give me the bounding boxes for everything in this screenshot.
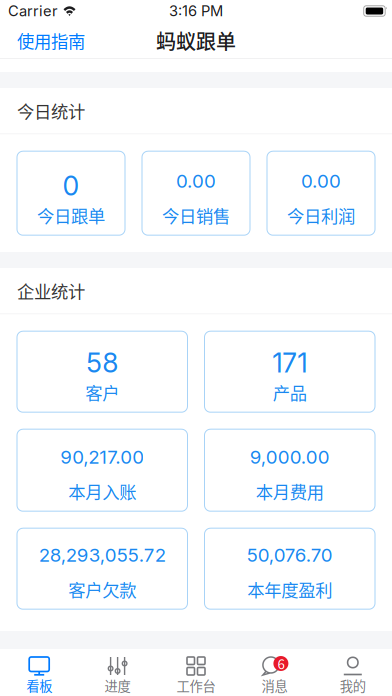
button[interactable]: 0.00 — [267, 151, 375, 235]
button[interactable]: 使用指南 — [17, 28, 85, 53]
staticText: 工作台 — [176, 676, 215, 695]
button[interactable]: 工作台 — [157, 649, 235, 696]
staticText: 消息 — [261, 676, 287, 695]
staticText: 客户欠款 — [68, 577, 136, 602]
staticText: 今日利润 — [287, 203, 355, 228]
staticText: 6 — [277, 654, 284, 673]
button[interactable]: 171 — [204, 331, 375, 412]
staticText: 本年度盈利 — [247, 577, 332, 602]
staticText: 0.00 — [176, 170, 216, 192]
button[interactable]: 28,293,055.72 — [17, 528, 187, 609]
staticText: 0 — [62, 170, 79, 202]
button[interactable]: 9,000.00 — [204, 429, 375, 511]
button[interactable]: 我的 — [314, 649, 392, 696]
staticText: 3:16 PM — [169, 2, 223, 20]
staticText: 进度 — [105, 676, 131, 695]
button[interactable]: 50,076.70 — [204, 528, 375, 609]
staticText: 171 — [272, 347, 307, 379]
staticText: 0.00 — [301, 170, 341, 192]
button[interactable]: 90,217.00 — [17, 429, 187, 511]
staticText: 本月费用 — [256, 479, 324, 504]
staticText: 9,000.00 — [250, 446, 330, 468]
staticText: 58 — [86, 347, 118, 379]
button[interactable]: 58 — [17, 331, 187, 412]
staticText: 产品 — [273, 380, 307, 405]
staticText: 客户 — [85, 380, 119, 405]
button[interactable]: 0.00 — [142, 151, 250, 235]
staticText: 今日统计 — [17, 98, 85, 123]
staticText: 使用指南 — [17, 28, 85, 53]
button[interactable]: 6 — [235, 649, 314, 696]
staticText: 今日销售 — [162, 203, 230, 228]
staticText: 看板 — [26, 676, 52, 695]
staticText: Carrier — [8, 2, 58, 20]
button[interactable]: 看板 — [0, 649, 78, 696]
staticText: 90,217.00 — [60, 446, 144, 468]
staticText: 企业统计 — [17, 278, 85, 303]
staticText: 今日跟单 — [37, 203, 105, 228]
staticText: 本月入账 — [68, 479, 136, 504]
staticText: 我的 — [340, 676, 366, 695]
staticText: 28,293,055.72 — [39, 544, 166, 566]
button[interactable]: 进度 — [78, 649, 157, 696]
staticText: 50,076.70 — [247, 544, 333, 566]
button[interactable]: 0 — [17, 151, 125, 235]
staticText: 蚂蚁跟单 — [156, 26, 236, 55]
